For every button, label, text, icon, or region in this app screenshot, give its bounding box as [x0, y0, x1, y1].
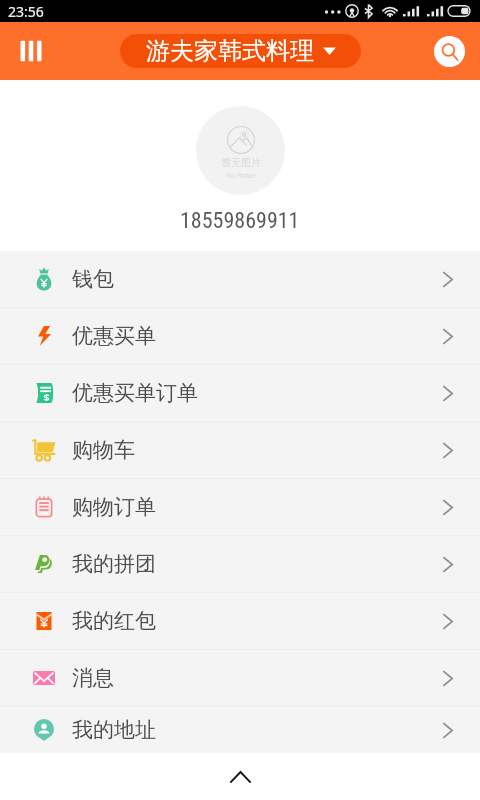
staticText: 消息: [72, 665, 114, 691]
button[interactable]: 我的拼团: [0, 536, 480, 592]
button[interactable]: Avatar: [196, 106, 285, 195]
staticText: 购物订单: [72, 494, 156, 520]
button[interactable]: 消息: [0, 650, 480, 706]
button[interactable]: 购物车: [0, 422, 480, 478]
staticText: 18559869911: [180, 208, 300, 234]
button[interactable]: Back: [218, 772, 262, 798]
staticText: 钱包: [72, 266, 114, 292]
staticText: 优惠买单订单: [72, 380, 198, 406]
button[interactable]: Search: [434, 36, 465, 67]
button[interactable]: 我的地址: [0, 707, 480, 753]
staticText: 我的红包: [72, 608, 156, 634]
staticText: 游夫家韩式料理: [146, 36, 314, 66]
button[interactable]: 游夫家韩式料理: [120, 34, 361, 68]
button[interactable]: 优惠买单: [0, 308, 480, 364]
staticText: 23:56: [8, 2, 44, 21]
button[interactable]: Menu: [11, 31, 51, 71]
staticText: 暂无图片: [221, 156, 261, 169]
staticText: 我的地址: [72, 717, 156, 743]
staticText: 购物车: [72, 437, 135, 463]
button[interactable]: 我的红包: [0, 593, 480, 649]
staticText: 我的拼团: [72, 551, 156, 577]
staticText: No Picture: [227, 172, 256, 180]
button[interactable]: 购物订单: [0, 479, 480, 535]
button[interactable]: 优惠买单订单: [0, 365, 480, 421]
staticText: 优惠买单: [72, 323, 156, 349]
button[interactable]: 钱包: [0, 251, 480, 307]
